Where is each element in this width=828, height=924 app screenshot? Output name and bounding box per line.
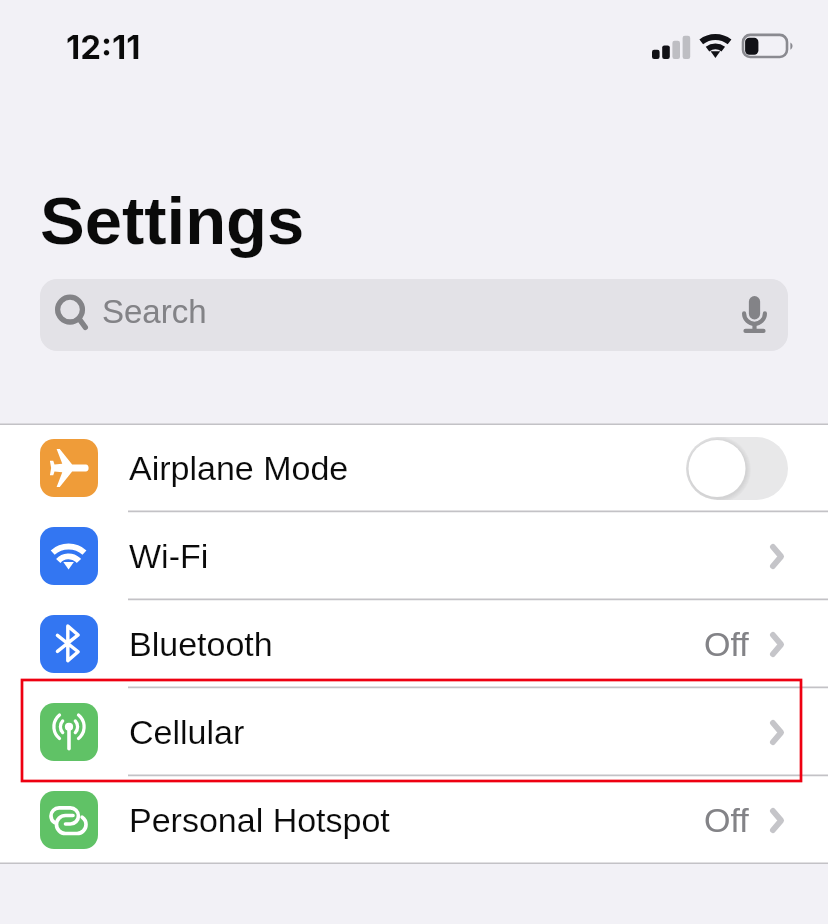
- staticText: 12:11: [66, 27, 141, 67]
- staticText: Bluetooth: [129, 625, 273, 663]
- staticText: Search: [102, 293, 207, 330]
- button[interactable]: Cellular: [0, 688, 828, 776]
- button[interactable]: Personal Hotspot: [0, 776, 828, 864]
- button[interactable]: Bluetooth: [0, 600, 828, 688]
- button[interactable]: Search: [40, 279, 788, 351]
- staticText: Settings: [40, 183, 305, 258]
- staticText: Off: [704, 625, 749, 663]
- staticText: Airplane Mode: [129, 449, 349, 487]
- staticText: Wi-Fi: [129, 537, 209, 575]
- staticText: Off: [704, 801, 749, 839]
- button[interactable]: Airplane Mode toggle: [686, 437, 788, 500]
- staticText: Cellular: [129, 713, 245, 751]
- button[interactable]: Airplane Mode: [0, 424, 828, 512]
- button[interactable]: Wi-Fi: [0, 512, 828, 600]
- staticText: Personal Hotspot: [129, 801, 390, 839]
